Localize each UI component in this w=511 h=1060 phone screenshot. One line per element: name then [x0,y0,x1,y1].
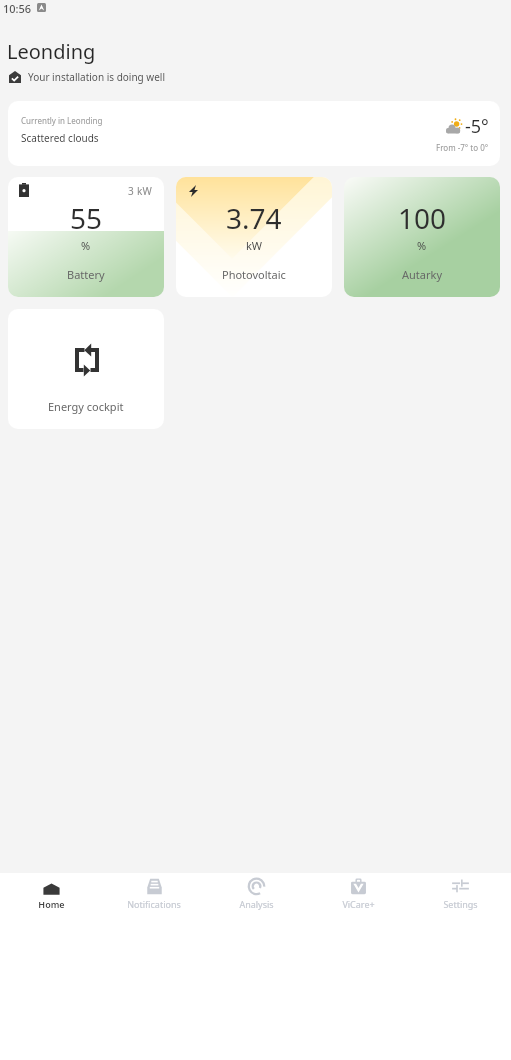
staticText: From -7° to 0° [436,142,489,153]
button[interactable]: ViCare+ [307,873,409,925]
staticText: 10:56 [3,1,32,16]
staticText: 3 kW [128,184,153,198]
staticText: Photovoltaic [222,267,286,282]
staticText: 55 [70,199,103,237]
staticText: -5° [465,114,489,139]
staticText: Your installation is doing well [28,70,166,84]
button[interactable]: 100 [344,177,500,297]
staticText: ViCare+ [342,898,375,910]
staticText: Currently in Leonding [21,115,103,126]
staticText: Analysis [239,898,274,910]
button[interactable]: Home [0,873,103,925]
staticText: Energy cockpit [48,399,124,414]
staticText: Home [38,898,65,910]
button[interactable]: Settings [409,873,511,925]
button[interactable]: 3 kW [8,177,164,297]
button[interactable]: Energy cockpit [8,309,164,429]
staticText: kW [246,238,263,253]
staticText: Notifications [127,898,181,910]
staticText: % [81,238,91,253]
button[interactable]: 3.74 [176,177,332,297]
staticText: Battery [67,267,105,282]
staticText: Scattered clouds [21,131,99,145]
staticText: Leonding [7,38,96,65]
staticText: % [417,238,427,253]
staticText: Autarky [402,267,442,282]
button[interactable]: Currently in Leonding [8,101,500,166]
staticText: 3.74 [226,199,282,237]
button[interactable]: Analysis [205,873,307,925]
staticText: Settings [443,898,478,910]
button[interactable]: Notifications [103,873,205,925]
staticText: 100 [398,199,447,237]
